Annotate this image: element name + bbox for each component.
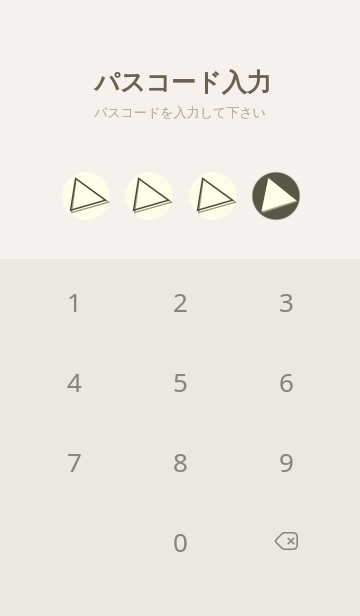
button[interactable]: 1 bbox=[21, 261, 127, 341]
button[interactable]: 2 bbox=[127, 261, 233, 341]
button[interactable]: 7 bbox=[21, 421, 127, 501]
staticText: 3 bbox=[279, 284, 294, 319]
staticText: 4 bbox=[67, 364, 82, 399]
other: Backspace bbox=[274, 532, 298, 550]
staticText: 8 bbox=[173, 444, 188, 479]
button[interactable]: 6 bbox=[233, 341, 339, 421]
button[interactable]: Backspace bbox=[233, 501, 339, 581]
button[interactable]: 4 bbox=[21, 341, 127, 421]
button[interactable]: Empty digit bbox=[188, 171, 238, 221]
button[interactable]: Entered digit bbox=[251, 171, 301, 221]
button[interactable]: Empty digit bbox=[124, 171, 174, 221]
staticText: パスコード入力 bbox=[6, 67, 360, 98]
staticText: 0 bbox=[173, 524, 188, 559]
staticText: 7 bbox=[67, 444, 82, 479]
staticText: 1 bbox=[67, 284, 82, 319]
button[interactable]: 3 bbox=[233, 261, 339, 341]
button[interactable]: Empty digit bbox=[61, 171, 111, 221]
button[interactable]: 8 bbox=[127, 421, 233, 501]
staticText: 6 bbox=[279, 364, 294, 399]
staticText: 5 bbox=[173, 364, 188, 399]
button[interactable]: 5 bbox=[127, 341, 233, 421]
staticText: 2 bbox=[173, 284, 188, 319]
staticText: パスコードを入力して下さい bbox=[0, 104, 360, 120]
button[interactable]: 9 bbox=[233, 421, 339, 501]
staticText: 9 bbox=[279, 444, 294, 479]
button[interactable]: 0 bbox=[127, 501, 233, 581]
